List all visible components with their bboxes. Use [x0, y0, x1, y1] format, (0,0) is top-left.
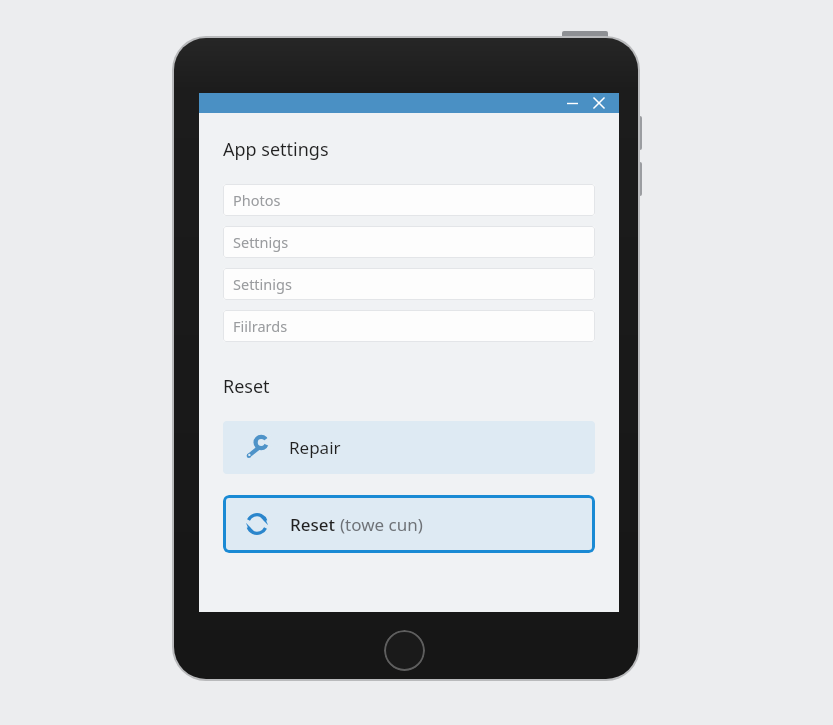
button[interactable]: Repair	[223, 421, 595, 474]
button[interactable]: Photos	[223, 184, 595, 216]
staticText: Repair	[289, 436, 341, 459]
staticText: Settnigs	[233, 232, 289, 252]
staticText: (towe cun)	[340, 513, 423, 536]
staticText: Settinigs	[233, 274, 292, 294]
staticText: Fiilrards	[233, 316, 288, 336]
button[interactable]: Settinigs	[223, 268, 595, 300]
button[interactable]: Reset	[223, 495, 595, 553]
staticText: App settings	[223, 137, 329, 162]
staticText: Photos	[233, 190, 281, 210]
button[interactable]: Minimize	[559, 93, 585, 113]
button[interactable]: Close	[585, 93, 613, 113]
staticText: Reset	[290, 513, 340, 536]
button[interactable]: Settnigs	[223, 226, 595, 258]
button[interactable]: Fiilrards	[223, 310, 595, 342]
staticText: Reset	[223, 374, 270, 399]
